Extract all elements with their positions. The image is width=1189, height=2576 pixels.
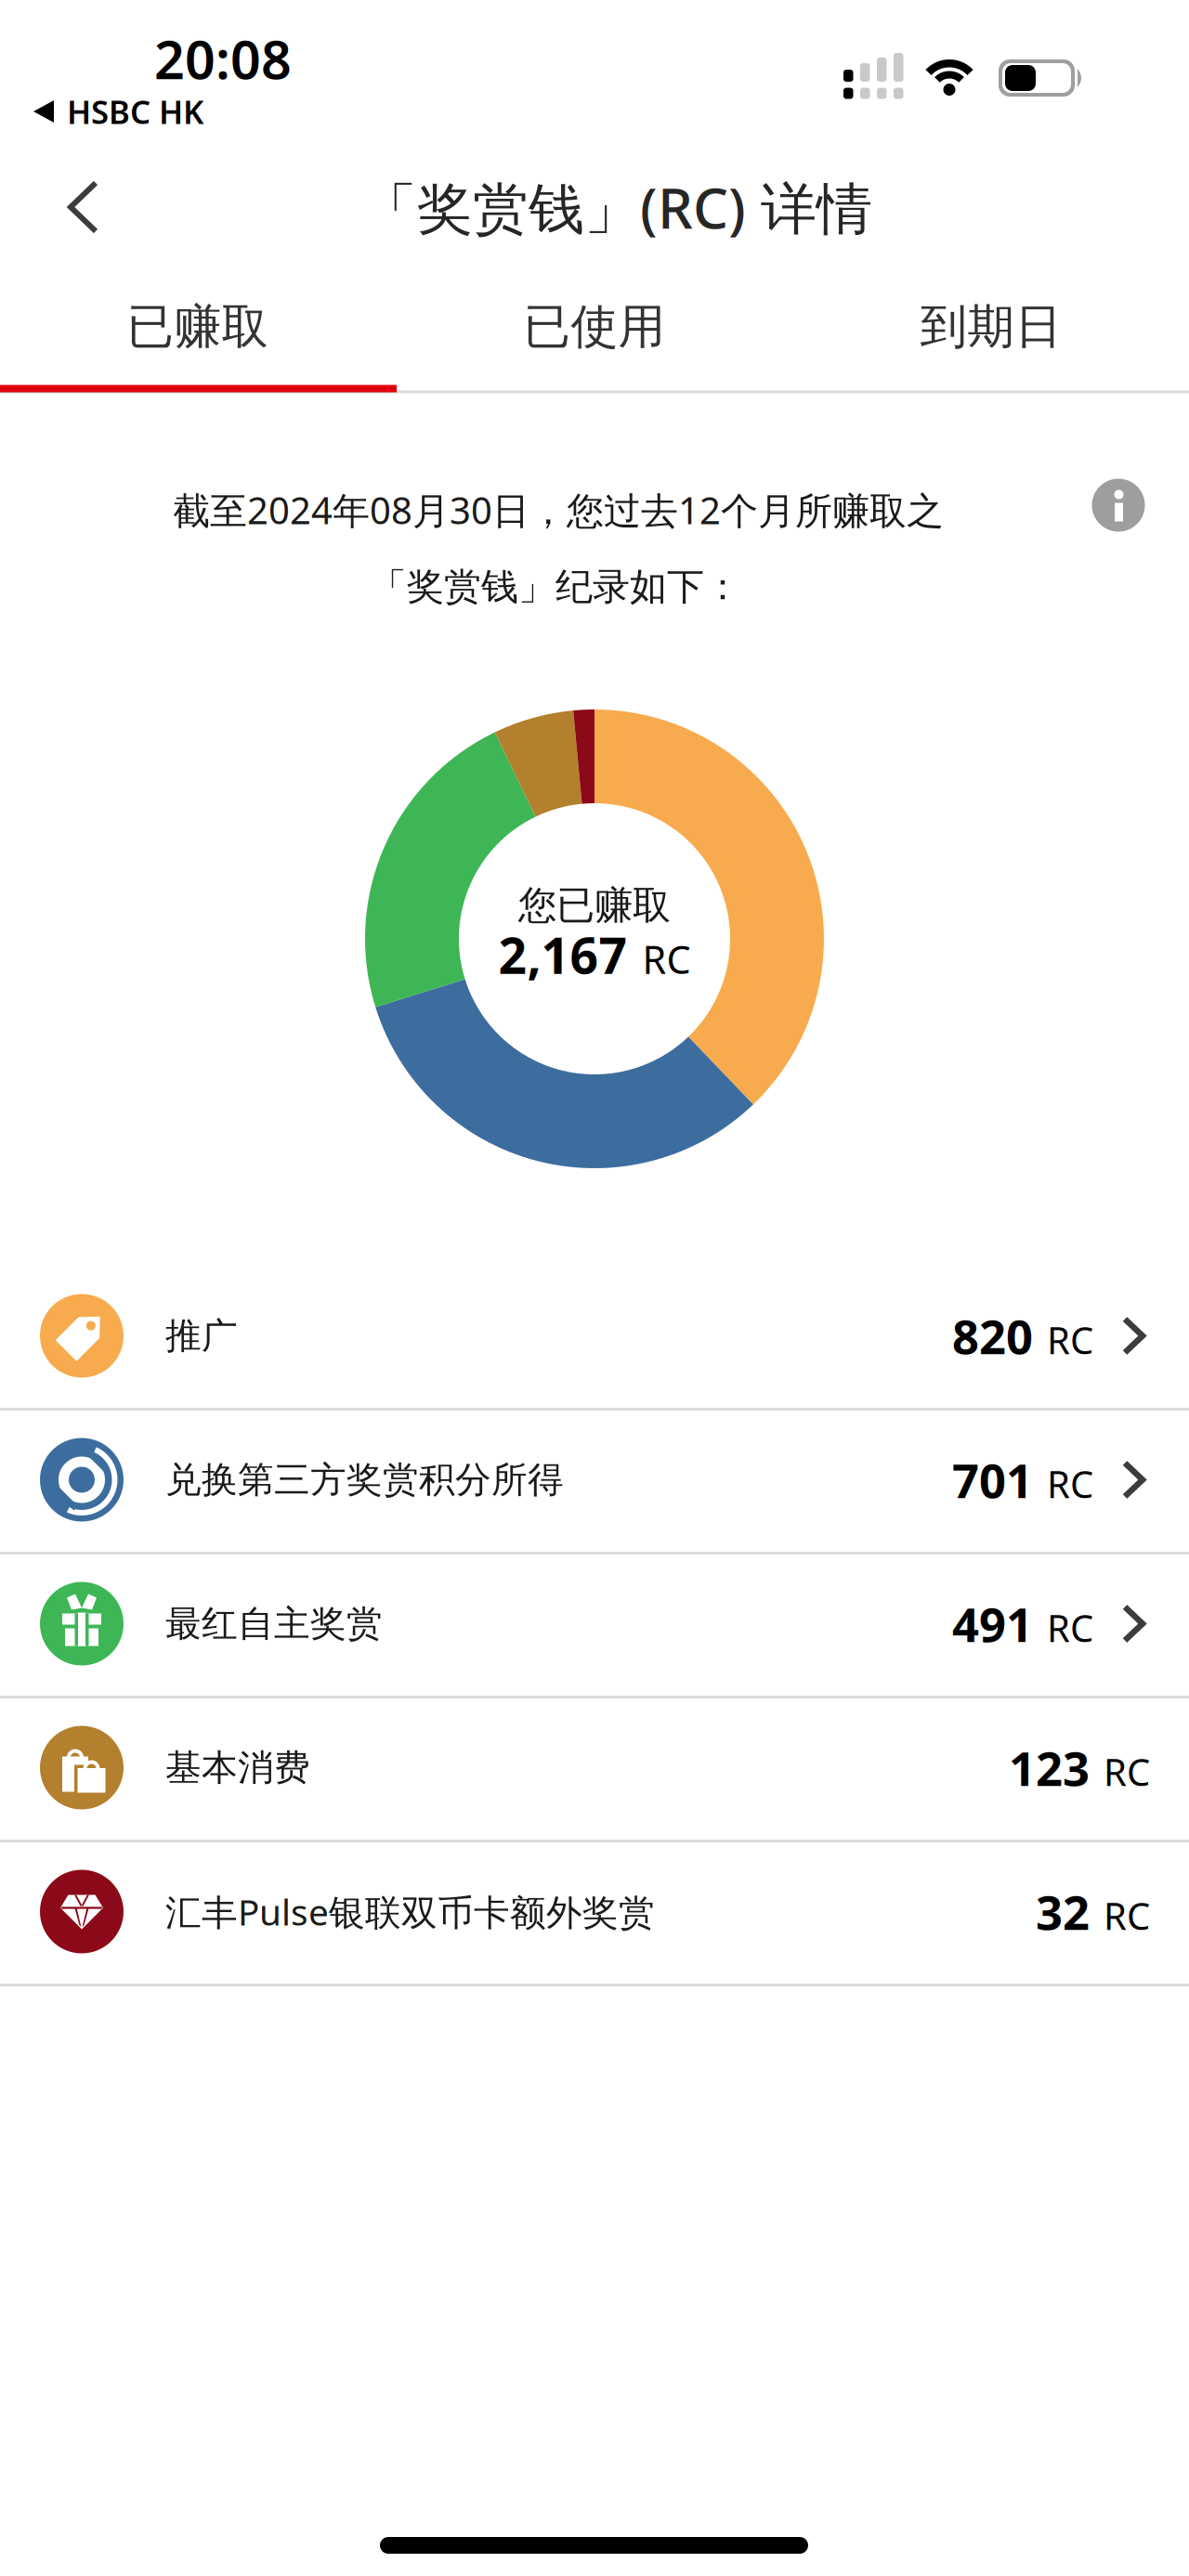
button[interactable]	[68, 181, 99, 235]
button[interactable]: 推广	[0, 1264, 1189, 1408]
staticText: 20:08	[154, 23, 292, 94]
staticText: RC	[1047, 1315, 1093, 1364]
staticText: 汇丰Pulse银联双币卡额外奖赏	[165, 1888, 655, 1935]
button[interactable]: 到期日	[793, 280, 1189, 373]
staticText: 701	[952, 1449, 1033, 1511]
staticText: 已使用	[523, 298, 666, 356]
staticText: RC	[1104, 1891, 1150, 1940]
staticText: 最红自主奖赏	[165, 1602, 383, 1646]
staticText: 32	[1036, 1880, 1090, 1943]
staticText: 基本消费	[165, 1746, 310, 1790]
button[interactable]: 已使用	[396, 280, 793, 373]
staticText: 123	[1009, 1736, 1090, 1799]
button[interactable]: 基本消费	[0, 1696, 1189, 1840]
staticText: RC	[1104, 1747, 1150, 1796]
staticText: 491	[952, 1592, 1033, 1655]
staticText: 截至2024年08月30日，您过去12个月所赚取之	[173, 485, 944, 534]
staticText: 推广	[165, 1314, 238, 1358]
staticText: RC	[642, 933, 691, 984]
button[interactable]: 兑换第三方奖赏积分所得	[0, 1408, 1189, 1552]
staticText: 820	[952, 1305, 1033, 1367]
staticText: 您已赚取	[518, 882, 671, 929]
button[interactable]: 最红自主奖赏	[0, 1552, 1189, 1696]
staticText: RC	[1047, 1459, 1093, 1508]
staticText: HSBC HK	[67, 90, 203, 133]
staticText: 已赚取	[127, 298, 269, 356]
staticText: 2,167	[498, 922, 627, 987]
staticText: RC	[1047, 1603, 1093, 1652]
button[interactable]: 汇丰Pulse银联双币卡额外奖赏	[0, 1840, 1189, 1984]
staticText: 到期日	[920, 298, 1062, 356]
staticText: 「奖赏钱」(RC) 详情	[361, 170, 872, 244]
staticText: 「奖赏钱」纪录如下：	[370, 564, 741, 610]
button[interactable]: 已赚取	[0, 280, 396, 373]
staticText: 兑换第三方奖赏积分所得	[165, 1458, 564, 1502]
button[interactable]	[1092, 479, 1145, 532]
